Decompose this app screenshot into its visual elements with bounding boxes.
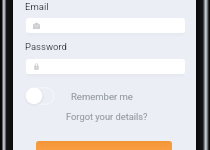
other: Email [33,22,40,29]
button[interactable] [36,141,172,150]
button[interactable]: Forgot your details? [15,111,198,122]
staticText: Remember me [71,91,133,102]
button[interactable]: Remember me toggle [25,87,55,105]
button[interactable]: Password [26,59,185,74]
button[interactable]: Email [26,18,185,33]
staticText: Forgot your details? [66,111,148,122]
staticText: Email [25,1,49,12]
staticText: Password [25,41,67,52]
other: Password [33,63,40,70]
